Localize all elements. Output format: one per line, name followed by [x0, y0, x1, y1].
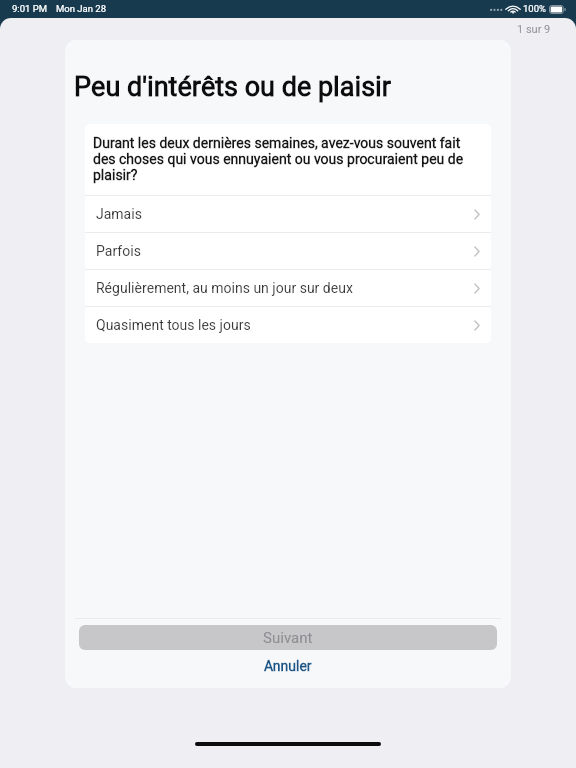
staticText: Jamais	[96, 204, 142, 225]
staticText: 9:01 PM	[12, 2, 47, 16]
staticText: Régulièrement, au moins un jour sur deux	[96, 278, 353, 299]
staticText: 1 sur 9	[517, 21, 551, 37]
button[interactable]: Régulièrement, au moins un jour sur deux	[85, 270, 491, 306]
button[interactable]: Suivant	[79, 625, 497, 650]
button[interactable]: Parfois	[85, 233, 491, 269]
staticText: Durant les deux dernières semaines, avez…	[93, 133, 479, 186]
staticText: Mon Jan 28	[56, 2, 107, 16]
button[interactable]: Quasiment tous les jours	[85, 307, 491, 343]
staticText: Quasiment tous les jours	[96, 315, 251, 336]
button[interactable]: Annuler	[65, 655, 511, 677]
staticText: Suivant	[263, 627, 313, 649]
staticText: 100%	[523, 2, 546, 16]
staticText: Peu d'intérêts ou de plaisir	[74, 68, 391, 108]
staticText: Annuler	[264, 656, 312, 677]
staticText: Parfois	[96, 241, 141, 262]
button[interactable]: Jamais	[85, 196, 491, 232]
